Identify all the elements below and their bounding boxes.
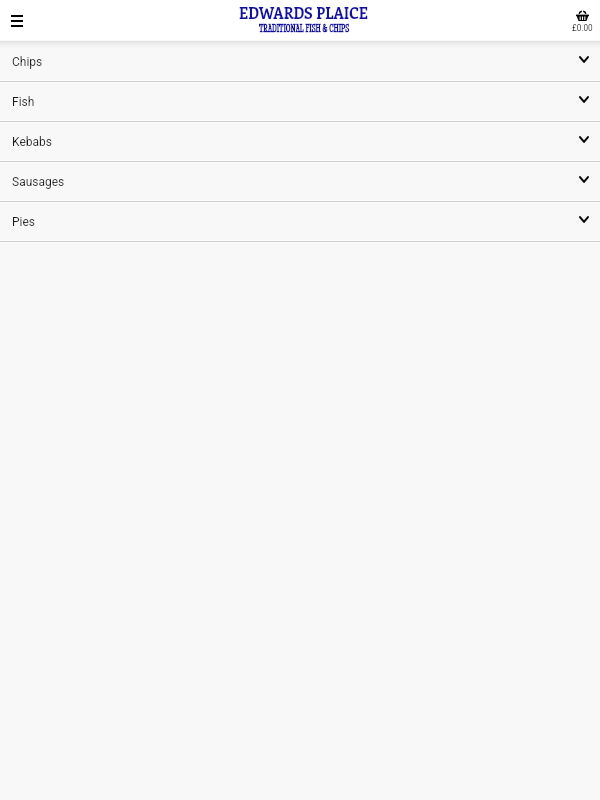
staticText: EDWARDS PLAICE (239, 3, 368, 23)
staticText: Pies (12, 215, 36, 229)
button[interactable]: Fish (0, 80, 600, 120)
staticText: Fish (12, 95, 35, 109)
staticText: Kebabs (12, 135, 52, 149)
button[interactable]: Kebabs (0, 120, 600, 160)
button[interactable]: Chips (0, 40, 600, 80)
button[interactable]: Pies (0, 200, 600, 240)
button[interactable]: Basket, total £0.00 (572, 11, 593, 31)
staticText: TRADITIONAL FISH & CHIPS (259, 21, 349, 35)
button[interactable]: Open navigation menu (5, 5, 28, 37)
staticText: Chips (12, 55, 43, 69)
staticText: £0.00 (572, 23, 593, 33)
button[interactable]: Sausages (0, 160, 600, 200)
staticText: Sausages (12, 175, 65, 189)
